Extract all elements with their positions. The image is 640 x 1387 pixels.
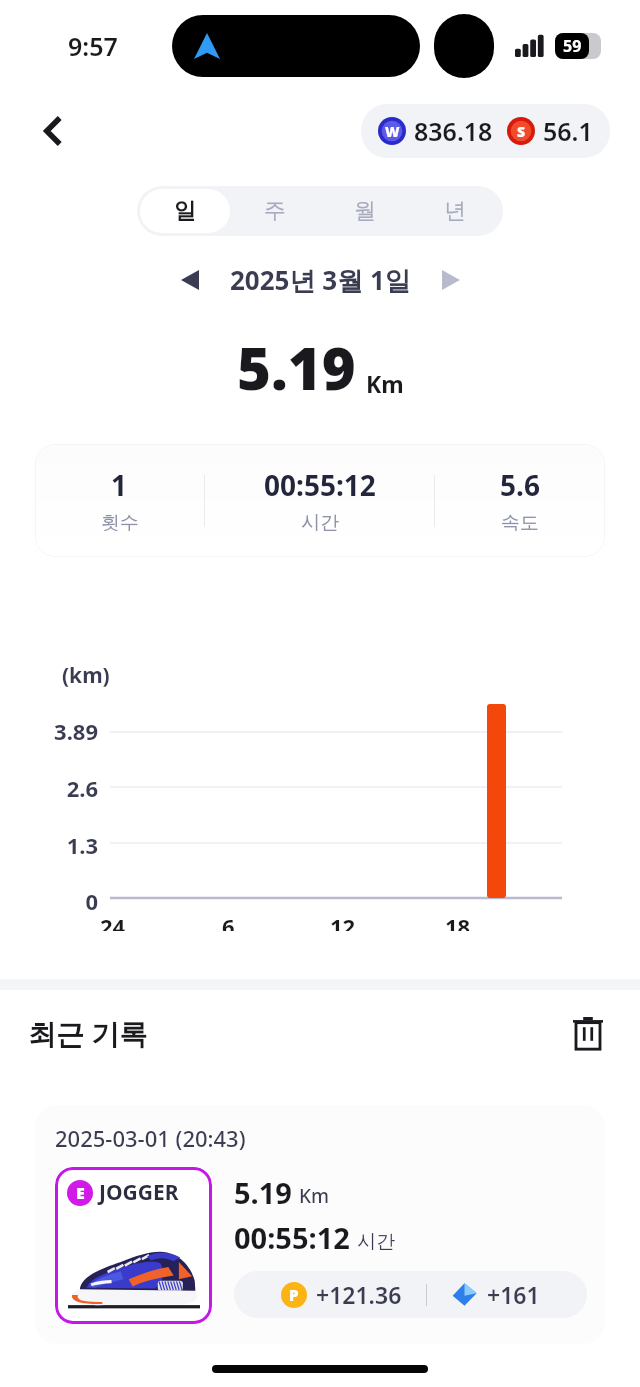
staticText: 시간 <box>301 511 339 535</box>
staticText: 3.89 <box>54 716 98 746</box>
staticText: (km) <box>62 661 110 690</box>
button[interactable]: 주 <box>230 189 320 233</box>
staticText: 00:55:12 <box>264 466 376 504</box>
button[interactable]: 일 <box>140 189 230 233</box>
button[interactable]: 월 <box>320 189 410 233</box>
button[interactable]: JOGGER sneaker NFT <box>55 1167 212 1324</box>
staticText: 월 <box>354 197 376 225</box>
staticText: W <box>385 122 400 141</box>
staticText: 1.3 <box>66 830 98 860</box>
staticText: 2025-03-01 (20:43) <box>55 1123 246 1153</box>
staticText: 최근 기록 <box>28 1014 148 1052</box>
staticText: 5.19 <box>237 328 356 407</box>
staticText: +161 <box>487 1279 540 1310</box>
staticText: 00:55:12 <box>234 1218 350 1257</box>
staticText: 18 <box>445 911 471 931</box>
button[interactable]: Next day <box>429 258 473 302</box>
button[interactable]: Delete records <box>562 1007 614 1059</box>
staticText: Km <box>366 368 404 399</box>
button[interactable]: 1 <box>35 444 605 557</box>
staticText: 24 <box>100 911 126 931</box>
staticText: 5.6 <box>500 466 540 504</box>
staticText: Km <box>299 1183 330 1209</box>
staticText: 2025년 3월 1일 <box>230 262 411 298</box>
staticText: 12 <box>330 911 356 931</box>
staticText: 836.18 <box>414 114 493 148</box>
staticText: P <box>289 1285 299 1305</box>
staticText: 속도 <box>501 511 539 535</box>
button[interactable]: 2025-03-01 (20:43) <box>35 1105 605 1344</box>
staticText: 5.19 <box>234 1173 292 1212</box>
staticText: 0 <box>85 886 98 916</box>
staticText: E <box>76 1182 85 1204</box>
staticText: 일 <box>174 197 196 225</box>
staticText: 년 <box>444 197 466 225</box>
staticText: 주 <box>264 197 286 225</box>
staticText: 59 <box>563 35 582 57</box>
button[interactable]: P <box>234 1271 587 1318</box>
staticText: JOGGER <box>99 1178 179 1207</box>
staticText: 1 <box>111 466 128 504</box>
button[interactable]: 년 <box>410 189 500 233</box>
staticText: +121.36 <box>316 1279 402 1310</box>
staticText: S <box>517 122 526 141</box>
staticText: 2.6 <box>66 773 98 803</box>
staticText: 9:57 <box>68 29 118 63</box>
staticText: 시간 <box>357 1230 395 1254</box>
button[interactable]: Previous day <box>168 258 212 302</box>
button[interactable]: W <box>361 104 610 158</box>
staticText: 횟수 <box>101 511 139 535</box>
staticText: 56.1 <box>543 114 593 148</box>
button[interactable]: Back <box>28 105 80 157</box>
staticText: 6 <box>222 911 235 931</box>
